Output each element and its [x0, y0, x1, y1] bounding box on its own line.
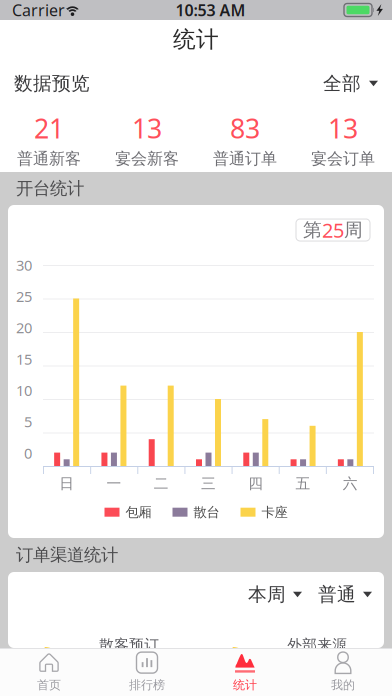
staticText: 二	[154, 474, 169, 492]
button[interactable]: 本周	[248, 577, 302, 612]
staticText: 25	[16, 287, 32, 306]
staticText: 首页	[37, 678, 61, 692]
staticText: 开台统计	[16, 178, 84, 199]
staticText: 普通	[318, 583, 356, 606]
staticText: 包厢	[125, 504, 151, 520]
staticText: 83	[230, 110, 260, 146]
button[interactable]: 第	[296, 219, 370, 241]
staticText: 25	[322, 217, 344, 243]
staticText: 第	[303, 218, 322, 241]
staticText: 5	[24, 412, 32, 431]
staticText: 本周	[248, 583, 286, 606]
staticText: 0	[24, 443, 32, 463]
staticText: 订单渠道统计	[16, 544, 118, 566]
staticText: 30	[16, 255, 32, 275]
staticText: 一	[106, 474, 121, 492]
staticText: 13	[132, 110, 162, 146]
staticText: 统计	[173, 26, 219, 53]
staticText: 全部	[323, 72, 361, 95]
button[interactable]: 首页	[0, 649, 98, 696]
staticText: 10:53 AM	[175, 0, 245, 21]
staticText: 21	[34, 110, 64, 146]
staticText: 卡座	[261, 504, 287, 520]
staticText: Carrier	[12, 0, 65, 21]
staticText: 统计	[233, 678, 257, 692]
staticText: 数据预览	[14, 72, 90, 95]
staticText: 周	[344, 218, 363, 241]
staticText: 六	[343, 474, 358, 492]
staticText: 五	[296, 474, 311, 492]
button[interactable]: 排行榜	[98, 649, 196, 696]
staticText: 四	[248, 474, 263, 492]
staticText: 散客预订	[99, 636, 159, 654]
staticText: 我的	[331, 678, 355, 692]
staticText: 三	[201, 474, 216, 492]
staticText: 13	[328, 110, 358, 146]
staticText: 20	[16, 318, 32, 337]
staticText: 10	[16, 381, 32, 400]
staticText: 日	[59, 474, 74, 492]
button[interactable]: 普通	[318, 577, 372, 612]
button[interactable]: 我的	[294, 649, 392, 696]
staticText: 排行榜	[129, 678, 165, 692]
staticText: 宴会订单	[311, 149, 375, 169]
button[interactable]: 统计	[196, 649, 294, 696]
staticText: 15	[16, 349, 32, 369]
staticText: 普通订单	[213, 149, 277, 169]
staticText: 宴会新客	[115, 149, 179, 169]
button[interactable]: 全部	[323, 64, 378, 103]
staticText: 普通新客	[17, 149, 81, 169]
staticText: 外部来源	[287, 636, 347, 654]
staticText: 散台	[193, 504, 219, 520]
